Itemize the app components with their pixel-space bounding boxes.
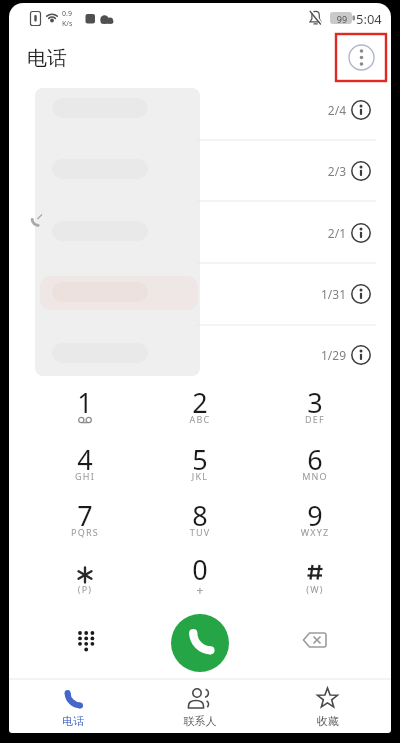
button[interactable] [9, 141, 339, 201]
staticText: 2/1 [296, 225, 346, 241]
button[interactable] [160, 434, 240, 486]
button[interactable] [45, 490, 125, 542]
staticText: 6 [285, 441, 345, 478]
button[interactable] [62, 616, 110, 664]
button[interactable] [9, 80, 339, 140]
staticText: 联系人 [170, 714, 230, 728]
button[interactable] [275, 550, 355, 602]
staticText: WXYZ [285, 526, 345, 538]
staticText: 1/31 [296, 286, 346, 302]
staticText: 5:04 [356, 10, 390, 28]
button[interactable] [349, 159, 374, 184]
staticText: DEF [285, 413, 345, 425]
staticText: MNO [285, 470, 345, 482]
button[interactable] [9, 680, 136, 733]
staticText: 4 [55, 441, 115, 478]
staticText: 2/4 [296, 102, 346, 118]
button[interactable] [45, 550, 125, 602]
button[interactable] [275, 490, 355, 542]
button[interactable] [45, 434, 125, 486]
staticText: TUV [170, 526, 230, 538]
staticText: GHI [55, 470, 115, 482]
button[interactable] [275, 434, 355, 486]
button[interactable] [349, 98, 374, 123]
button[interactable] [136, 680, 264, 733]
button[interactable] [160, 490, 240, 542]
button[interactable] [160, 377, 240, 429]
staticText: 电话 [27, 46, 107, 71]
staticText: PQRS [55, 526, 115, 538]
staticText: 0.9 K/s [62, 9, 82, 29]
staticText: 1 [55, 384, 115, 421]
staticText: 0 [170, 551, 230, 588]
staticText: 7 [55, 497, 115, 534]
staticText: 8 [170, 497, 230, 534]
staticText: ABC [170, 413, 230, 425]
button[interactable] [264, 680, 391, 733]
staticText: JKL [170, 470, 230, 482]
button[interactable] [9, 264, 339, 324]
button[interactable] [275, 377, 355, 429]
button[interactable] [291, 616, 339, 664]
button[interactable] [9, 325, 339, 385]
button[interactable] [349, 343, 374, 368]
staticText: (P) [55, 583, 115, 595]
staticText: 1/29 [296, 347, 346, 363]
button[interactable] [171, 614, 229, 672]
button[interactable] [345, 41, 378, 74]
button[interactable] [160, 550, 240, 602]
staticText: 99 [333, 13, 351, 25]
staticText: (W) [285, 583, 345, 595]
staticText: 电话 [43, 714, 103, 728]
button[interactable] [349, 221, 374, 246]
staticText: 9 [285, 497, 345, 534]
staticText: 5 [170, 441, 230, 478]
staticText: 2 [170, 384, 230, 421]
button[interactable] [45, 377, 125, 429]
staticText: 3 [285, 384, 345, 421]
staticText: + [170, 582, 230, 598]
button[interactable] [349, 282, 374, 307]
staticText: 收藏 [298, 714, 358, 728]
button[interactable] [9, 203, 339, 263]
staticText: 2/3 [296, 163, 346, 179]
